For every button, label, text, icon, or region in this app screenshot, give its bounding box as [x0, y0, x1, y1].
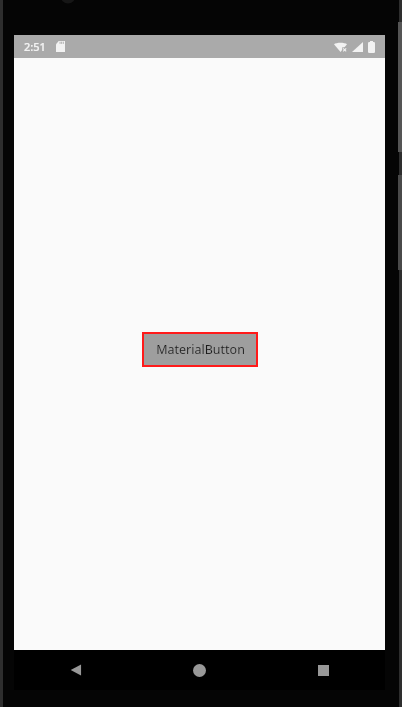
staticText: MaterialButton [156, 341, 245, 358]
button[interactable]: MaterialButton [142, 332, 258, 367]
staticText: 2:51 [24, 39, 46, 54]
button[interactable]: Back [14, 650, 137, 690]
button[interactable]: Home [137, 650, 261, 690]
button[interactable]: Recent apps [261, 650, 385, 690]
